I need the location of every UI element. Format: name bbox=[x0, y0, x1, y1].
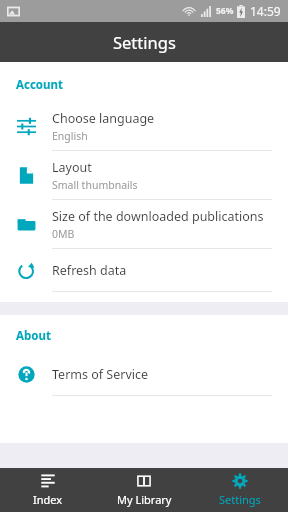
staticText: About bbox=[16, 328, 51, 344]
staticText: Terms of Service bbox=[52, 366, 149, 383]
staticText: 56% bbox=[216, 5, 234, 17]
staticText: Layout bbox=[52, 159, 92, 176]
button[interactable]: Choose language bbox=[0, 102, 288, 151]
button[interactable]: Terms of Service bbox=[0, 353, 288, 396]
staticText: Account bbox=[16, 77, 63, 93]
staticText: Settings bbox=[113, 31, 176, 53]
button[interactable]: Layout bbox=[0, 151, 288, 200]
staticText: English bbox=[52, 129, 88, 143]
button[interactable]: Index bbox=[0, 468, 96, 512]
staticText: Small thumbnails bbox=[52, 178, 138, 192]
staticText: Settings bbox=[219, 492, 261, 507]
staticText: Refresh data bbox=[52, 262, 127, 279]
button[interactable]: Size bbox=[0, 200, 288, 249]
staticText: Size of the downloaded publications bbox=[52, 208, 264, 225]
button[interactable]: Refresh data bbox=[0, 249, 288, 292]
button[interactable]: Settings bbox=[192, 468, 288, 512]
staticText: Index bbox=[33, 492, 63, 507]
staticText: 0MB bbox=[52, 227, 75, 241]
button[interactable]: My Library bbox=[96, 468, 192, 512]
staticText: Choose language bbox=[52, 110, 155, 127]
staticText: 14:59 bbox=[250, 3, 281, 19]
staticText: My Library bbox=[117, 492, 172, 507]
